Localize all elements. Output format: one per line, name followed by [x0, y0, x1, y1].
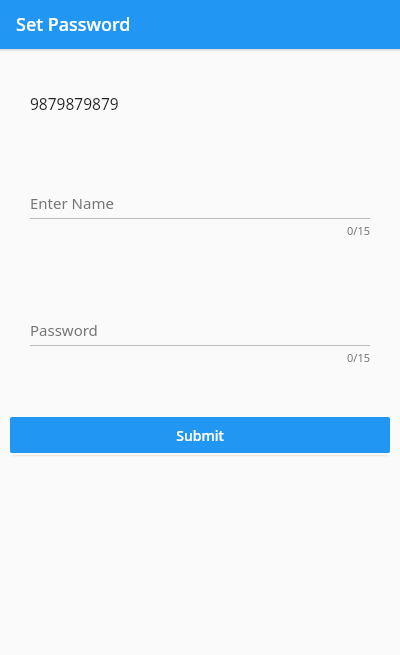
button[interactable]: Password	[30, 314, 370, 345]
staticText: 0/15	[347, 223, 370, 238]
staticText: 0/15	[347, 350, 370, 365]
button[interactable]: Submit	[10, 417, 390, 453]
staticText: 9879879879	[30, 93, 119, 114]
staticText: Set Password	[16, 12, 131, 37]
button[interactable]: Enter Name	[30, 187, 370, 218]
staticText: Password	[30, 320, 98, 340]
staticText: Enter Name	[30, 193, 114, 213]
staticText: Submit	[176, 426, 224, 445]
